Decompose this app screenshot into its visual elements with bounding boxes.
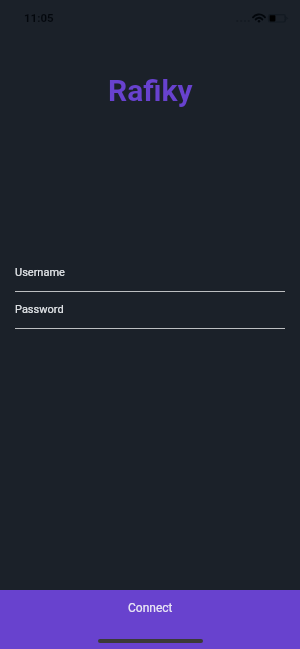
button[interactable]: Connect <box>0 590 300 649</box>
button[interactable]: Username <box>15 266 285 292</box>
other: Status icons <box>234 8 292 24</box>
staticText: Rafiky <box>108 73 193 108</box>
button[interactable]: Password <box>15 303 285 329</box>
staticText: Password <box>15 303 64 316</box>
staticText: Username <box>15 266 65 279</box>
staticText: 11:05 <box>24 11 54 24</box>
staticText: Connect <box>128 601 173 615</box>
